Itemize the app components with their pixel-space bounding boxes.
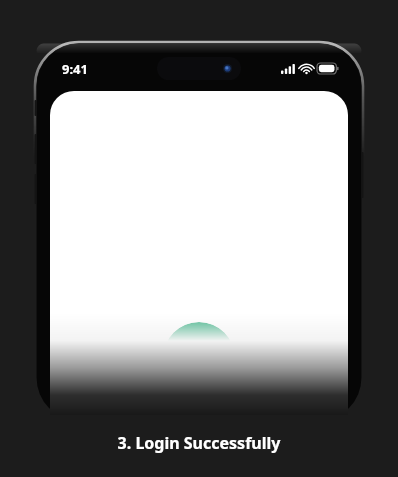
staticText: 9:41 [62, 60, 88, 78]
button[interactable]: Login successful [163, 322, 235, 394]
staticText: 3. Login Successfully [0, 432, 398, 454]
